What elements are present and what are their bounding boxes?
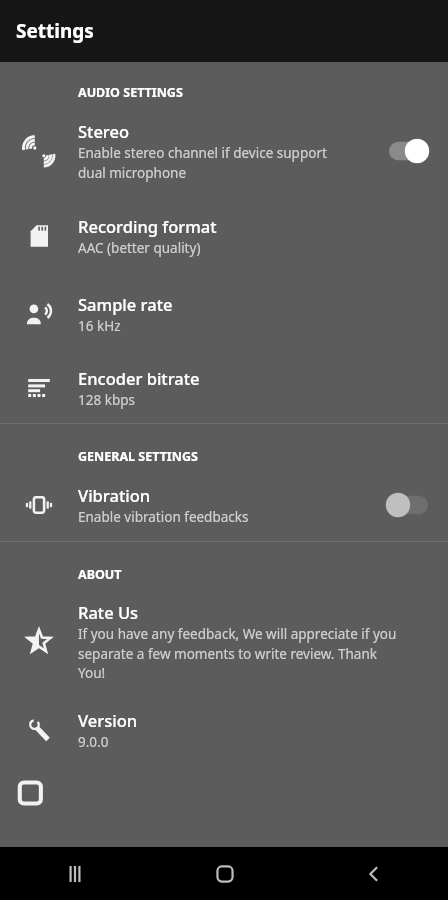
button[interactable]: [0, 765, 448, 847]
staticText: Stereo: [78, 120, 130, 142]
staticText: Vibration: [78, 484, 151, 506]
staticText: GENERAL SETTINGS: [78, 448, 198, 465]
button[interactable]: Sample rate: [0, 275, 448, 353]
button[interactable]: Recording format: [0, 197, 448, 275]
button[interactable]: Home: [150, 847, 299, 900]
staticText: AAC (better quality): [78, 239, 201, 257]
staticText: Version: [78, 709, 138, 731]
staticText: Enable vibration feedbacks: [78, 508, 249, 526]
button[interactable]: Vibration: [0, 469, 448, 541]
staticText: Settings: [16, 18, 94, 44]
staticText: 16 kHz: [78, 317, 121, 335]
staticText: ABOUT: [78, 566, 122, 583]
button[interactable]: Stereo: [0, 105, 448, 197]
staticText: Encoder bitrate: [78, 367, 200, 389]
button[interactable]: Stereo toggle: [374, 138, 448, 164]
button[interactable]: Version: [0, 695, 448, 765]
staticText: AUDIO SETTINGS: [78, 84, 183, 101]
button[interactable]: Rate Us: [0, 587, 448, 695]
button[interactable]: Recents: [0, 847, 150, 900]
staticText: 128 kbps: [78, 391, 135, 409]
staticText: 9.0.0: [78, 733, 109, 751]
staticText: Recording format: [78, 215, 217, 237]
staticText: If you have any feedback, We will apprec…: [78, 625, 397, 682]
button[interactable]: Back: [299, 847, 448, 900]
button[interactable]: Encoder bitrate: [0, 353, 448, 423]
staticText: Rate Us: [78, 601, 139, 623]
button[interactable]: Vibration toggle: [374, 492, 448, 518]
staticText: Sample rate: [78, 293, 173, 315]
staticText: Enable stereo channel if device support …: [78, 144, 327, 182]
